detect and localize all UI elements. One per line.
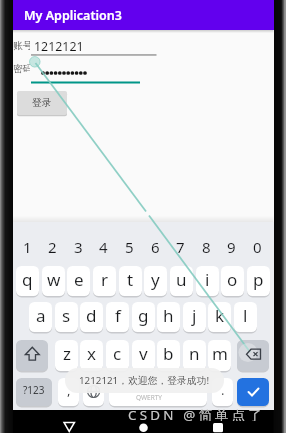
button[interactable] xyxy=(16,340,48,371)
button[interactable]: y xyxy=(144,266,167,296)
button[interactable] xyxy=(129,415,159,433)
staticText: i xyxy=(205,268,210,291)
button[interactable] xyxy=(109,378,207,406)
button[interactable]: i xyxy=(196,266,219,296)
staticText: 2 xyxy=(48,237,57,254)
staticText: 0 xyxy=(253,237,262,254)
staticText: g xyxy=(138,304,149,327)
button[interactable] xyxy=(83,378,104,406)
button[interactable] xyxy=(237,340,269,371)
staticText: 账号 xyxy=(13,40,30,52)
staticText: k xyxy=(215,304,225,327)
staticText: p xyxy=(253,268,264,291)
button[interactable]: ?123 xyxy=(16,378,52,406)
button[interactable]: q xyxy=(16,266,39,296)
button[interactable]: d xyxy=(80,302,103,332)
staticText: 密码 xyxy=(13,63,30,75)
button[interactable]: g xyxy=(132,302,155,332)
button[interactable] xyxy=(55,415,85,433)
button[interactable]: f xyxy=(106,302,129,332)
button[interactable]: t xyxy=(119,266,142,296)
staticText: z xyxy=(63,342,71,365)
button[interactable]: l xyxy=(234,302,257,332)
button[interactable]: p xyxy=(247,266,270,296)
button[interactable] xyxy=(237,378,269,406)
staticText: n xyxy=(189,342,200,365)
staticText: y xyxy=(151,268,160,291)
staticText: 1212121，欢迎您，登录成功! xyxy=(79,374,210,387)
staticText: 登录 xyxy=(32,97,52,109)
staticText: j xyxy=(192,304,197,327)
staticText: l xyxy=(243,304,248,327)
staticText: o xyxy=(227,268,238,291)
staticText: CSDN @简单点了 xyxy=(128,406,265,421)
staticText: w xyxy=(47,268,61,291)
staticText: h xyxy=(163,304,174,327)
button[interactable]: n xyxy=(183,340,206,371)
button[interactable]: , xyxy=(58,378,79,406)
button[interactable]: x xyxy=(80,340,103,371)
staticText: 1 xyxy=(23,237,32,254)
staticText: t xyxy=(127,268,134,291)
button[interactable]: s xyxy=(55,302,78,332)
staticText: b xyxy=(163,342,174,365)
button[interactable]: o xyxy=(221,266,244,296)
staticText: 6 xyxy=(151,237,160,254)
staticText: 7 xyxy=(176,237,185,254)
button[interactable]: b xyxy=(157,340,180,371)
button[interactable]: h xyxy=(157,302,180,332)
staticText: . xyxy=(221,381,225,399)
button[interactable]: w xyxy=(42,266,65,296)
staticText: , xyxy=(67,381,71,399)
button[interactable]: j xyxy=(183,302,206,332)
staticText: ?123 xyxy=(23,383,45,397)
staticText: 4 xyxy=(99,237,108,254)
staticText: a xyxy=(36,304,46,327)
button[interactable] xyxy=(203,415,233,433)
button[interactable]: e xyxy=(67,266,90,296)
button[interactable]: r xyxy=(93,266,116,296)
staticText: q xyxy=(22,268,33,291)
staticText: v xyxy=(139,342,148,365)
button[interactable]: m xyxy=(208,340,231,371)
staticText: f xyxy=(115,304,121,327)
button[interactable]: v xyxy=(132,340,155,371)
staticText: r xyxy=(101,268,109,291)
staticText: 5 xyxy=(125,237,134,254)
button[interactable]: z xyxy=(55,340,78,371)
staticText: d xyxy=(86,304,97,327)
staticText: 3 xyxy=(74,237,83,254)
staticText: 8 xyxy=(202,237,211,254)
staticText: My Application3 xyxy=(24,7,122,24)
staticText: s xyxy=(62,304,71,327)
staticText: m xyxy=(212,342,228,365)
staticText: e xyxy=(74,268,84,291)
button[interactable]: . xyxy=(212,378,233,406)
button[interactable]: u xyxy=(170,266,193,296)
staticText: x xyxy=(87,342,96,365)
staticText: u xyxy=(176,268,187,291)
button[interactable]: a xyxy=(29,302,52,332)
staticText: 1212121 xyxy=(34,38,84,55)
button[interactable]: c xyxy=(106,340,129,371)
staticText: c xyxy=(113,342,122,365)
staticText: QWERTY xyxy=(136,393,163,402)
button[interactable]: k xyxy=(208,302,231,332)
staticText: 9 xyxy=(227,237,236,254)
button[interactable]: 登录 xyxy=(17,91,67,115)
